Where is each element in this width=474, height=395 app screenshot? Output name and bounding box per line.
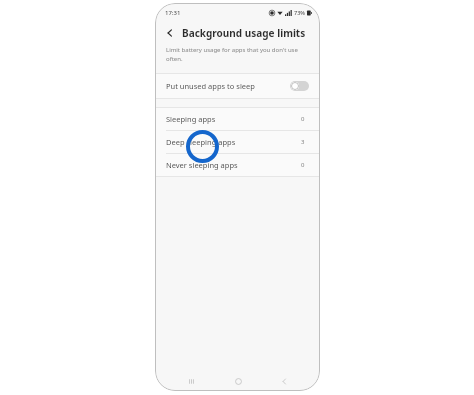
button[interactable]: Home xyxy=(227,371,249,391)
staticText: 17:31 xyxy=(165,9,181,17)
staticText: Deep sleeping apps xyxy=(166,137,301,147)
staticText: Put unused apps to sleep xyxy=(166,81,290,91)
staticText: Never sleeping apps xyxy=(166,160,301,170)
button[interactable]: Deep sleeping apps xyxy=(155,131,320,153)
button[interactable]: Sleeping apps xyxy=(155,108,320,130)
staticText: 0 xyxy=(301,161,309,169)
staticText: 3 xyxy=(301,138,309,146)
staticText: Limit battery usage for apps that you do… xyxy=(166,46,306,63)
staticText: 73% xyxy=(294,9,305,16)
button[interactable]: Back xyxy=(163,26,177,40)
button[interactable]: Put unused apps to sleep xyxy=(155,74,320,98)
button[interactable]: Back xyxy=(273,371,295,391)
button[interactable]: Never sleeping apps xyxy=(155,154,320,176)
staticText: Background usage limits xyxy=(182,26,306,40)
button[interactable]: Recent apps xyxy=(180,371,202,391)
other: Put unused apps to sleep toggle xyxy=(290,81,309,91)
staticText: Sleeping apps xyxy=(166,114,301,124)
staticText: 0 xyxy=(301,115,309,123)
